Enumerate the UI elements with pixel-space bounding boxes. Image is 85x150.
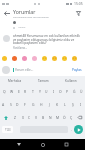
button[interactable]: Merhaba [0, 76, 29, 85]
staticText: M [56, 115, 60, 120]
staticText: B [42, 115, 45, 120]
staticText: N [49, 115, 52, 120]
staticText: Yanitlama... [13, 46, 28, 50]
staticText: T [32, 89, 34, 94]
staticText: V [35, 115, 38, 120]
button[interactable]: Emoji reaction [42, 54, 52, 63]
staticText: D [16, 102, 19, 107]
button[interactable]: V [33, 111, 40, 124]
button[interactable]: Back [0, 7, 13, 19]
staticText: . [71, 127, 72, 132]
button[interactable]: N [47, 111, 54, 124]
button[interactable]: Tamam [29, 76, 57, 85]
button[interactable]: Recent apps [61, 139, 72, 150]
button[interactable]: ahmet48 Yorumunuz en cok kullanilan etki… [3, 31, 82, 50]
button[interactable]: R [22, 85, 29, 98]
staticText: W [10, 89, 14, 94]
staticText: Ç [70, 115, 73, 120]
staticText: F [24, 102, 26, 107]
staticText: P [66, 89, 69, 94]
staticText: Yorumlar [13, 8, 36, 15]
button[interactable]: . [70, 126, 73, 133]
staticText: I [53, 89, 55, 94]
staticText: J [49, 102, 50, 107]
staticText: Z [14, 115, 16, 120]
button[interactable]: Emoji reaction [22, 54, 32, 63]
button[interactable]: Ü [78, 85, 85, 98]
button[interactable]: Emoji reaction [52, 54, 62, 63]
staticText: K [56, 102, 59, 107]
button[interactable]: L [61, 98, 69, 111]
button[interactable]: Paylas [71, 66, 83, 74]
button[interactable]: Back [13, 139, 24, 150]
staticText: X [22, 115, 24, 120]
button[interactable]: Ö [61, 111, 68, 124]
button[interactable]: F [21, 98, 29, 111]
button[interactable]: Home [37, 139, 48, 150]
button[interactable]: C [26, 111, 33, 124]
button[interactable]: Ğ [71, 85, 78, 98]
button[interactable]: Z [11, 111, 19, 124]
button[interactable]: H [37, 98, 45, 111]
staticText: Merhaba [8, 79, 22, 83]
button[interactable]: M [54, 111, 61, 124]
button[interactable]: T [29, 85, 36, 98]
button[interactable]: ?123 [2, 126, 13, 133]
staticText: Ğ [73, 89, 76, 94]
staticText: S [10, 102, 12, 107]
button[interactable]: J [45, 98, 53, 111]
staticText: Ö [63, 115, 66, 120]
button[interactable]: Ç [68, 111, 75, 124]
button[interactable]: E [15, 85, 22, 98]
button[interactable]: U [43, 85, 50, 98]
staticText: Q [3, 89, 6, 94]
button[interactable]: Kullanın [57, 76, 85, 85]
staticText: Ş [72, 102, 74, 107]
staticText: C [28, 115, 31, 120]
staticText: yorumlariniz nasil sira gorunecek [13, 16, 49, 19]
button[interactable]: X [19, 111, 26, 124]
button[interactable]: I [50, 85, 57, 98]
button[interactable]: Sort comments [13, 21, 16, 24]
button[interactable]: Emoji reaction [32, 54, 42, 63]
button[interactable]: D [14, 98, 21, 111]
button[interactable]: G [29, 98, 37, 111]
button[interactable]: Ş [69, 98, 77, 111]
button[interactable]: Send [74, 125, 83, 134]
staticText: A [2, 102, 5, 107]
staticText: O [59, 89, 62, 94]
button[interactable]: Backspace [75, 111, 85, 124]
button[interactable]: Q [0, 85, 8, 98]
button[interactable]: Filter [72, 7, 85, 19]
button[interactable]: K [53, 98, 61, 111]
staticText: ?123 [5, 128, 11, 132]
staticText: Ü [80, 89, 83, 94]
button[interactable]: Emoji reaction [12, 54, 22, 63]
button[interactable]: B [40, 111, 47, 124]
staticText: I [80, 102, 82, 107]
button[interactable]: Shift [0, 111, 11, 124]
button[interactable]: Y [36, 85, 43, 98]
staticText: Yorum ekle... [15, 68, 34, 72]
button[interactable]: Emoji reaction [2, 54, 12, 63]
button[interactable]: Emoji reaction [62, 54, 72, 63]
button[interactable]: W [8, 85, 15, 98]
staticText: U [45, 89, 48, 94]
staticText: Yanitla [18, 26, 26, 29]
button[interactable]: S [7, 98, 14, 111]
button[interactable]: O [57, 85, 64, 98]
staticText: 15:05 [74, 1, 83, 6]
staticText: ahmet48 Yorumunuz en cok kullanilan etki… [13, 34, 82, 44]
staticText: L [64, 102, 66, 107]
button[interactable]: A [0, 98, 7, 111]
staticText: Tamam [38, 79, 49, 83]
button[interactable]: I [77, 98, 85, 111]
staticText: G [32, 102, 35, 107]
button[interactable]: Emoji reaction [72, 54, 82, 63]
button[interactable]: P [64, 85, 71, 98]
staticText: Paylas [72, 68, 82, 72]
staticText: H [40, 102, 43, 107]
staticText: Kullanın [65, 79, 77, 83]
staticText: R [24, 89, 27, 94]
